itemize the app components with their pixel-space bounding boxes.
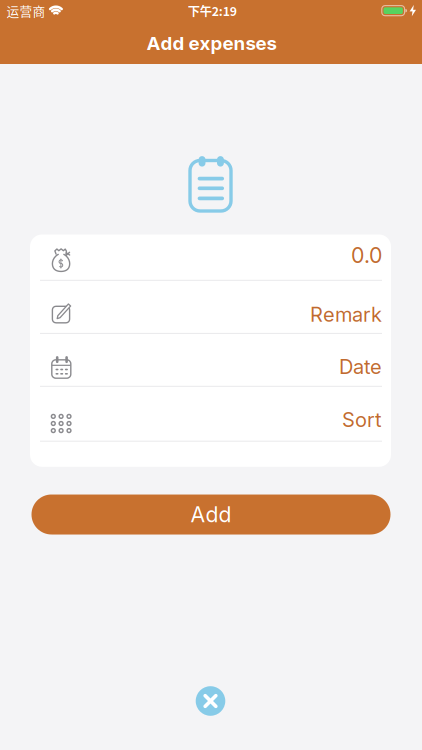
staticText: Remark (310, 303, 382, 326)
button[interactable]: Sort (30, 386, 391, 441)
button[interactable]: Date (30, 333, 391, 386)
staticText: Sort (342, 408, 382, 431)
staticText: Add expenses (146, 32, 276, 54)
button[interactable]: Add (31, 494, 390, 534)
staticText: 下午2:19 (188, 2, 237, 19)
staticText: 运营商 (6, 1, 45, 20)
staticText: Add (190, 502, 231, 527)
button[interactable]: Remark (30, 280, 391, 333)
button[interactable]: 0.0 (30, 234, 391, 280)
staticText: 0.0 (351, 243, 382, 268)
staticText: Date (339, 355, 382, 379)
button[interactable]: Close (196, 686, 225, 716)
